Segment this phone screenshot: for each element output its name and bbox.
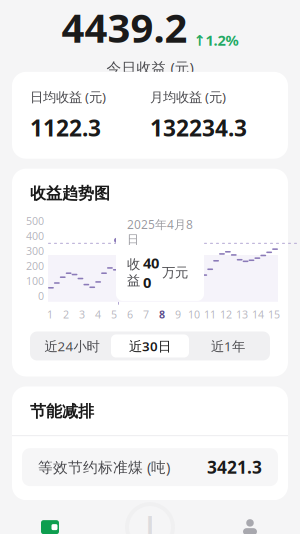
staticText: 节能减排 [30,401,94,421]
staticText: 3421.3 [207,456,262,479]
staticText: 200 [26,259,44,273]
button[interactable]: 近24小时 [33,334,111,357]
staticText: 14 [252,307,264,321]
staticText: 2025年4月8日 [127,216,193,247]
staticText: 1122.3 [30,113,101,143]
staticText: 400 [26,229,44,243]
staticText: 近1年 [211,337,245,355]
staticText: 9 [175,307,181,321]
staticText: 400 [143,253,159,292]
staticText: J [145,504,155,534]
button[interactable]: 近1年 [189,334,267,357]
staticText: 7 [143,307,149,321]
button[interactable]: 我的 [200,500,300,534]
staticText: 月均收益 (元) [150,88,226,106]
staticText: 今日收益 (元) [106,58,193,77]
staticText: 6 [127,307,133,321]
button[interactable]: 收益 [0,500,100,534]
staticText: 1 [47,307,53,321]
staticText: 收益趋势图 [30,184,110,203]
staticText: 0 [38,289,44,303]
staticText: 5 [111,307,117,321]
staticText: ↑1.2% [193,30,238,50]
button[interactable]: 近30日 [111,334,189,357]
staticText: 500 [26,214,44,228]
staticText: 近24小时 [44,337,99,355]
staticText: 11 [204,307,216,321]
staticText: 4 [95,307,101,321]
staticText: 8 [159,307,165,321]
staticText: 15 [268,307,280,321]
staticText: 100 [26,274,44,288]
staticText: 等效节约标准煤 (吨) [38,457,170,477]
staticText: 13 [236,307,248,321]
button[interactable]: 首页 [100,500,200,534]
staticText: 近30日 [129,337,171,355]
staticText: 3 [79,307,85,321]
staticText: 2 [63,307,69,321]
staticText: 12 [220,307,232,321]
staticText: 132234.3 [150,113,247,143]
staticText: 万元 [162,264,188,281]
staticText: 日均收益 (元) [30,88,106,106]
staticText: 4439.2 [61,1,187,54]
staticText: 收益 [127,256,140,289]
staticText: 300 [26,244,44,258]
staticText: 10 [188,307,200,321]
